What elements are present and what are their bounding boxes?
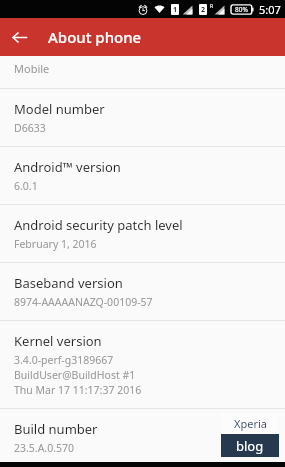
staticText: 6.0.1 [14, 179, 38, 193]
button[interactable]: Baseband version [0, 263, 285, 320]
button[interactable]: Mobile [0, 56, 285, 88]
staticText: 1 [173, 5, 178, 15]
button[interactable]: Android™ version [0, 147, 285, 204]
staticText: 23.5.A.0.570 [14, 441, 75, 455]
staticText: Build number [14, 420, 98, 438]
button[interactable]: Android security patch level [0, 205, 285, 262]
staticText: D6633 [14, 121, 46, 135]
staticText: About phone [48, 27, 142, 47]
staticText: Kernel version [14, 332, 102, 350]
staticText: 80% [235, 5, 248, 14]
staticText: BuildUser@BuildHost #1 [14, 368, 136, 382]
staticText: 3.4.0-perf-g3189667 [14, 353, 114, 367]
staticText: Xperia [234, 416, 267, 431]
staticText: February 1, 2016 [14, 237, 97, 251]
button[interactable]: Build number [0, 409, 285, 466]
button[interactable]: Back [0, 18, 38, 56]
staticText: 5:07 [259, 2, 281, 17]
button[interactable]: Model number [0, 89, 285, 146]
staticText: Thu Mar 17 11:17:37 2016 [14, 383, 142, 397]
staticText: R [210, 3, 214, 10]
staticText: Baseband version [14, 274, 123, 292]
staticText: Android™ version [14, 158, 121, 176]
staticText: Mobile [14, 61, 50, 76]
staticText: Android security patch level [14, 216, 183, 234]
staticText: 8974-AAAAANAZQ-00109-57 [14, 295, 153, 309]
staticText: Model number [14, 100, 105, 118]
staticText: 2 [201, 5, 206, 15]
staticText: blog [236, 437, 264, 455]
button[interactable]: Kernel version [0, 321, 285, 408]
